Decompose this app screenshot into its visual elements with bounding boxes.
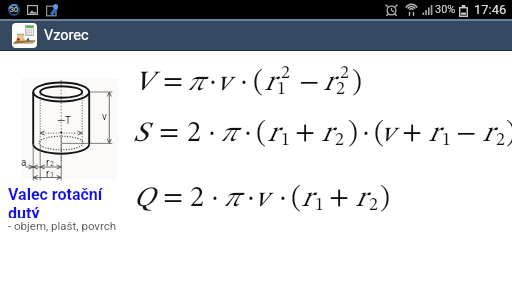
staticText: +	[329, 185, 350, 213]
staticText: ·	[362, 120, 370, 148]
staticText: +	[402, 120, 423, 148]
staticText: r	[264, 69, 275, 97]
staticText: 2	[336, 80, 345, 98]
staticText: v	[102, 111, 107, 123]
staticText: ·	[244, 120, 252, 148]
staticText: ·	[279, 185, 287, 213]
staticText: =	[163, 69, 184, 97]
staticText: 1	[50, 171, 54, 179]
staticText: Q	[133, 185, 154, 213]
staticText: r	[321, 120, 332, 148]
staticText: 17:46	[474, 2, 507, 17]
staticText: r	[355, 185, 366, 213]
staticText: 1	[277, 80, 286, 98]
staticText: S	[133, 120, 148, 148]
staticText: V	[133, 69, 153, 97]
staticText: r	[482, 120, 493, 148]
staticText: ·	[209, 69, 217, 97]
staticText: r	[323, 69, 334, 97]
button[interactable]: Vzorec	[0, 21, 512, 50]
staticText: 1	[281, 131, 290, 149]
staticText: π	[223, 185, 240, 213]
staticText: a	[21, 157, 27, 169]
staticText: Vzorec	[44, 27, 89, 44]
staticText: - objem, plašt, povrch	[8, 219, 117, 232]
staticText: (	[253, 69, 263, 97]
staticText: 2	[190, 185, 204, 213]
staticText: Valec rotační dutý	[8, 185, 112, 218]
staticText: 2	[340, 64, 349, 82]
staticText: 30	[10, 6, 18, 14]
staticText: −	[299, 69, 320, 97]
staticText: r	[267, 120, 278, 148]
staticText: ·	[208, 120, 216, 148]
button[interactable]: T	[0, 52, 127, 236]
staticText: 2	[187, 120, 201, 148]
staticText: 1	[442, 131, 451, 149]
staticText: (	[291, 185, 301, 213]
staticText: π	[220, 120, 237, 148]
staticText: )	[348, 120, 358, 148]
staticText: (	[256, 120, 266, 148]
staticText: r	[46, 157, 50, 169]
staticText: )	[506, 120, 512, 148]
staticText: (	[374, 120, 384, 148]
staticText: 2	[369, 196, 378, 214]
staticText: 2	[50, 160, 54, 168]
staticText: 30%	[435, 3, 456, 16]
staticText: 2	[281, 64, 290, 82]
staticText: =	[159, 120, 180, 148]
staticText: ·	[211, 185, 219, 213]
staticText: −	[456, 120, 477, 148]
staticText: ·	[247, 185, 255, 213]
staticText: =	[163, 185, 184, 213]
staticText: 2	[496, 131, 505, 149]
staticText: v	[254, 185, 268, 213]
staticText: v	[216, 69, 230, 97]
staticText: )	[380, 185, 390, 213]
staticText: π	[187, 69, 204, 97]
staticText: r	[46, 168, 50, 180]
staticText: 2	[335, 131, 344, 149]
staticText: ·	[240, 69, 248, 97]
staticText: T	[65, 115, 71, 127]
staticText: )	[352, 69, 362, 97]
staticText: v	[380, 120, 394, 148]
staticText: 1	[315, 196, 324, 214]
staticText: r	[301, 185, 312, 213]
staticText: r	[428, 120, 439, 148]
staticText: +	[295, 120, 316, 148]
